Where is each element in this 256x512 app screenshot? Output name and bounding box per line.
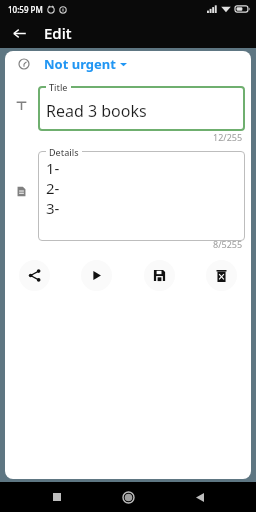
staticText: Details (49, 146, 79, 158)
button[interactable]: Share (19, 260, 50, 291)
button[interactable]: Play (81, 260, 112, 291)
staticText: 12/255 (213, 131, 243, 143)
button[interactable]: Recents (42, 482, 72, 512)
staticText: Edit (44, 23, 72, 43)
staticText: Title (49, 81, 68, 93)
button[interactable]: Save (144, 260, 175, 291)
button[interactable]: Home (113, 482, 143, 512)
staticText: 8/5255 (213, 238, 243, 250)
button[interactable]: Back (185, 482, 215, 512)
button[interactable]: Read 3 books (38, 86, 245, 131)
staticText: 3- (46, 198, 60, 218)
staticText: Not urgent (44, 55, 116, 73)
staticText: 10:59 PM (8, 4, 43, 15)
button[interactable]: Not urgent (5, 51, 251, 77)
staticText: Read 3 books (46, 100, 147, 122)
staticText: 1- (46, 158, 60, 178)
button[interactable]: Delete (206, 260, 237, 291)
button[interactable]: Back (6, 20, 32, 46)
button[interactable]: 1- (38, 151, 245, 241)
staticText: 2- (46, 178, 60, 198)
